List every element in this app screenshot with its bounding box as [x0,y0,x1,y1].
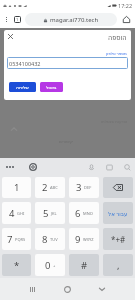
staticText: 1 [16,17,19,22]
button[interactable]: More options [1,14,12,25]
staticText: ביטול [46,85,57,90]
staticText: PQRS [15,237,26,242]
button[interactable]: Settings [26,160,39,173]
button[interactable]: Tabs [12,14,23,25]
button[interactable]: 2 [35,177,65,198]
staticText: 3 [76,181,82,194]
button[interactable]: , [103,254,133,276]
staticText: magar.ai770.tech [50,16,99,24]
staticText: DEF [84,185,92,190]
button[interactable]: Voice input [85,161,97,173]
button[interactable]: 0 [35,254,65,276]
button[interactable]: Stickers [103,161,115,173]
button[interactable]: 6 [69,202,99,224]
button[interactable]: 8 [35,228,65,250]
staticText: + [53,263,56,268]
button[interactable]: Backspace [103,177,133,198]
staticText: MNO [83,211,93,216]
staticText: * [14,259,20,272]
staticText: קישורים [59,139,74,144]
button[interactable]: *+# [103,228,133,250]
staticText: 6 [75,207,81,220]
button[interactable]: 4 [2,202,31,224]
staticText: 7 [7,233,13,246]
staticText: GHI [17,211,25,216]
staticText: שליחה [16,85,29,90]
button[interactable]: 0534100432 [7,57,128,69]
staticText: 0 [45,259,51,272]
staticText: # [81,259,88,272]
button[interactable]: 3 [69,177,99,198]
button[interactable]: שליחה [9,82,36,92]
staticText: TUV [50,237,58,242]
staticText: מספר טלפון [106,51,127,56]
staticText: 5 [43,207,49,220]
button[interactable]: Home [57,279,77,299]
staticText: עבור אל [108,210,128,217]
button[interactable]: * [2,254,31,276]
staticText: *+# [111,234,126,245]
staticText: 1 [14,181,20,194]
button[interactable]: Home [120,13,133,26]
button[interactable]: 5 [35,202,65,224]
staticText: JKL [51,211,57,216]
button[interactable]: Close [4,30,16,42]
staticText: 2 [42,181,48,194]
button[interactable]: Back [92,279,112,299]
staticText: 4 [9,207,15,220]
staticText: 17:22 [118,2,133,9]
button[interactable]: More keyboard options [3,160,16,173]
button[interactable]: # [69,254,99,276]
staticText: WXYZ [83,237,94,242]
button[interactable]: 9 [69,228,99,250]
staticText: 9 [75,233,81,246]
button[interactable]: ביטול [40,82,63,92]
staticText: ABC [50,185,58,190]
button[interactable]: Search [121,161,133,173]
button[interactable]: 1 [2,177,31,198]
button[interactable]: 7 [2,228,31,250]
staticText: , [117,259,120,272]
staticText: 8 [42,233,48,246]
button[interactable]: magar.ai770.tech [25,13,117,26]
button[interactable]: Recent apps [22,279,42,299]
staticText: 0534100432 [9,60,41,67]
staticText: הוספה [108,34,127,42]
button[interactable]: עבור אל [103,202,133,224]
